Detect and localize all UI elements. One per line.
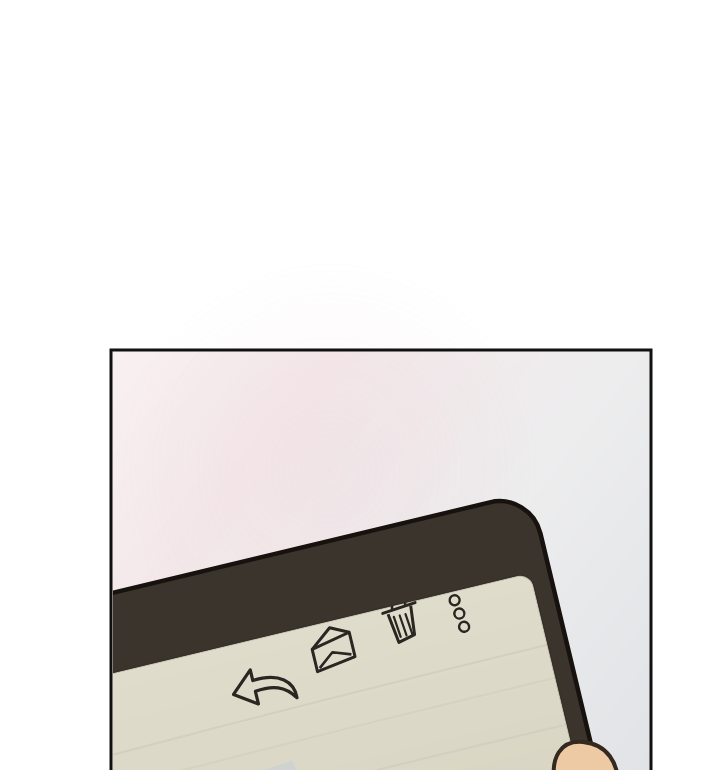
button[interactable]: Illustration: tap Reply on the open emai…: [0, 0, 720, 770]
